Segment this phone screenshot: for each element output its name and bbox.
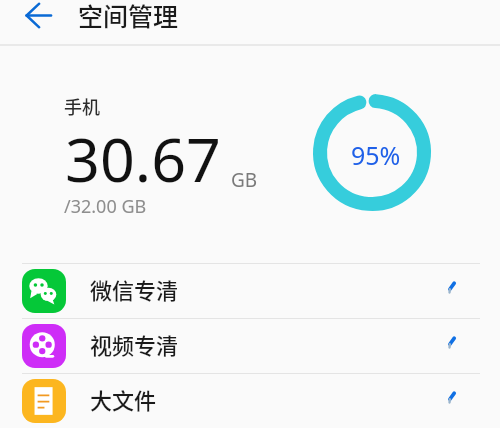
button[interactable]: 大文件 [0, 374, 500, 428]
staticText: 手机 [64, 93, 100, 119]
staticText: 大文件 [90, 383, 157, 415]
staticText: 30.67 [65, 117, 221, 200]
staticText: 95% [351, 138, 401, 172]
button[interactable]: 微信专清 [0, 264, 500, 318]
staticText: 空间管理 [78, 0, 179, 33]
button[interactable]: 视频专清 [0, 319, 500, 373]
staticText: 微信专清 [90, 273, 179, 305]
staticText: 视频专清 [90, 328, 179, 360]
button[interactable]: Back [10, 0, 67, 44]
staticText: GB [231, 167, 258, 193]
staticText: /32.00 GB [64, 194, 147, 219]
